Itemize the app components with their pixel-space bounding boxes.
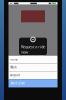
staticText: Home (10, 58, 18, 61)
staticText: Request a ride now (21, 44, 45, 54)
button[interactable]: Work (8, 63, 57, 71)
button[interactable]: Saved place (8, 79, 57, 87)
button[interactable]: Request a ride now (19, 38, 47, 55)
staticText: Work (10, 66, 16, 69)
button[interactable]: Airport (8, 71, 57, 79)
button[interactable]: Home (8, 56, 57, 63)
staticText: Saved place (10, 81, 25, 85)
staticText: Arrives in 4 min (22, 54, 44, 58)
staticText: Airport (10, 73, 20, 77)
